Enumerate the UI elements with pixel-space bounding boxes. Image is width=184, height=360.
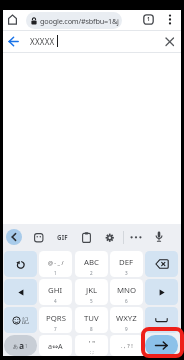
staticText: a [19, 340, 25, 352]
button[interactable]: a⇔A [39, 335, 72, 356]
button[interactable] [130, 236, 142, 239]
staticText: あ [13, 343, 19, 349]
button[interactable]: DEF [110, 251, 143, 277]
button[interactable]: google.com/#sbfbu=1&j [26, 12, 122, 29]
button[interactable]: JKL [75, 279, 108, 305]
button[interactable] [145, 307, 178, 333]
staticText: WXYZ [116, 313, 137, 324]
staticText: @ - _ / [48, 259, 64, 266]
button[interactable] [82, 232, 91, 243]
staticText: 1 [54, 270, 57, 276]
button[interactable]: PQRS [39, 307, 72, 333]
staticText: 1 [25, 343, 28, 349]
button[interactable] [145, 335, 178, 356]
button[interactable]: . , ? ! [110, 335, 143, 356]
button[interactable]: ' " [75, 335, 108, 356]
staticText: 3 [125, 270, 128, 276]
staticText: 2 [90, 270, 93, 276]
button[interactable] [4, 251, 37, 277]
staticText: 5 [90, 298, 93, 304]
staticText: 4 [54, 298, 57, 304]
staticText: : ; [90, 349, 94, 355]
button[interactable]: 1 [143, 14, 154, 25]
button[interactable]: 記 [4, 307, 37, 333]
button[interactable]: WXYZ [110, 307, 143, 333]
staticText: PQRS [46, 313, 66, 324]
button[interactable] [165, 13, 175, 26]
staticText: 9 [125, 326, 128, 332]
staticText: ' " [89, 339, 95, 348]
staticText: google.com/#sbfbu=1&j [40, 16, 119, 26]
button[interactable] [105, 233, 115, 243]
button[interactable] [155, 231, 163, 243]
staticText: MNO [117, 285, 137, 296]
button[interactable] [165, 37, 175, 47]
button[interactable] [4, 279, 37, 305]
button[interactable]: @ - _ / [39, 251, 72, 277]
staticText: 記 [22, 316, 29, 325]
staticText: 8 [90, 326, 93, 332]
button[interactable]: TUV [75, 307, 108, 333]
button[interactable]: GIF [54, 233, 70, 241]
button[interactable]: MNO [110, 279, 143, 305]
button[interactable]: あ [4, 335, 37, 356]
staticText: GHI [48, 285, 63, 296]
staticText: JKL [86, 285, 98, 296]
staticText: XXXXX [30, 36, 55, 47]
button[interactable] [7, 14, 18, 25]
button[interactable] [8, 36, 19, 47]
staticText: 1 [147, 16, 150, 23]
staticText: 6 [125, 298, 128, 304]
staticText: a⇔A [48, 341, 63, 351]
staticText: ABC [84, 257, 99, 268]
button[interactable] [145, 251, 178, 277]
button[interactable]: GHI [39, 279, 72, 305]
staticText: . , ? ! [121, 342, 133, 349]
button[interactable] [145, 279, 178, 305]
button[interactable]: ABC [75, 251, 108, 277]
staticText: GIF [57, 233, 68, 241]
button[interactable] [6, 229, 22, 245]
button[interactable] [34, 233, 44, 243]
staticText: DEF [119, 257, 134, 268]
staticText: 7 [54, 326, 57, 332]
staticText: TUV [84, 313, 99, 324]
